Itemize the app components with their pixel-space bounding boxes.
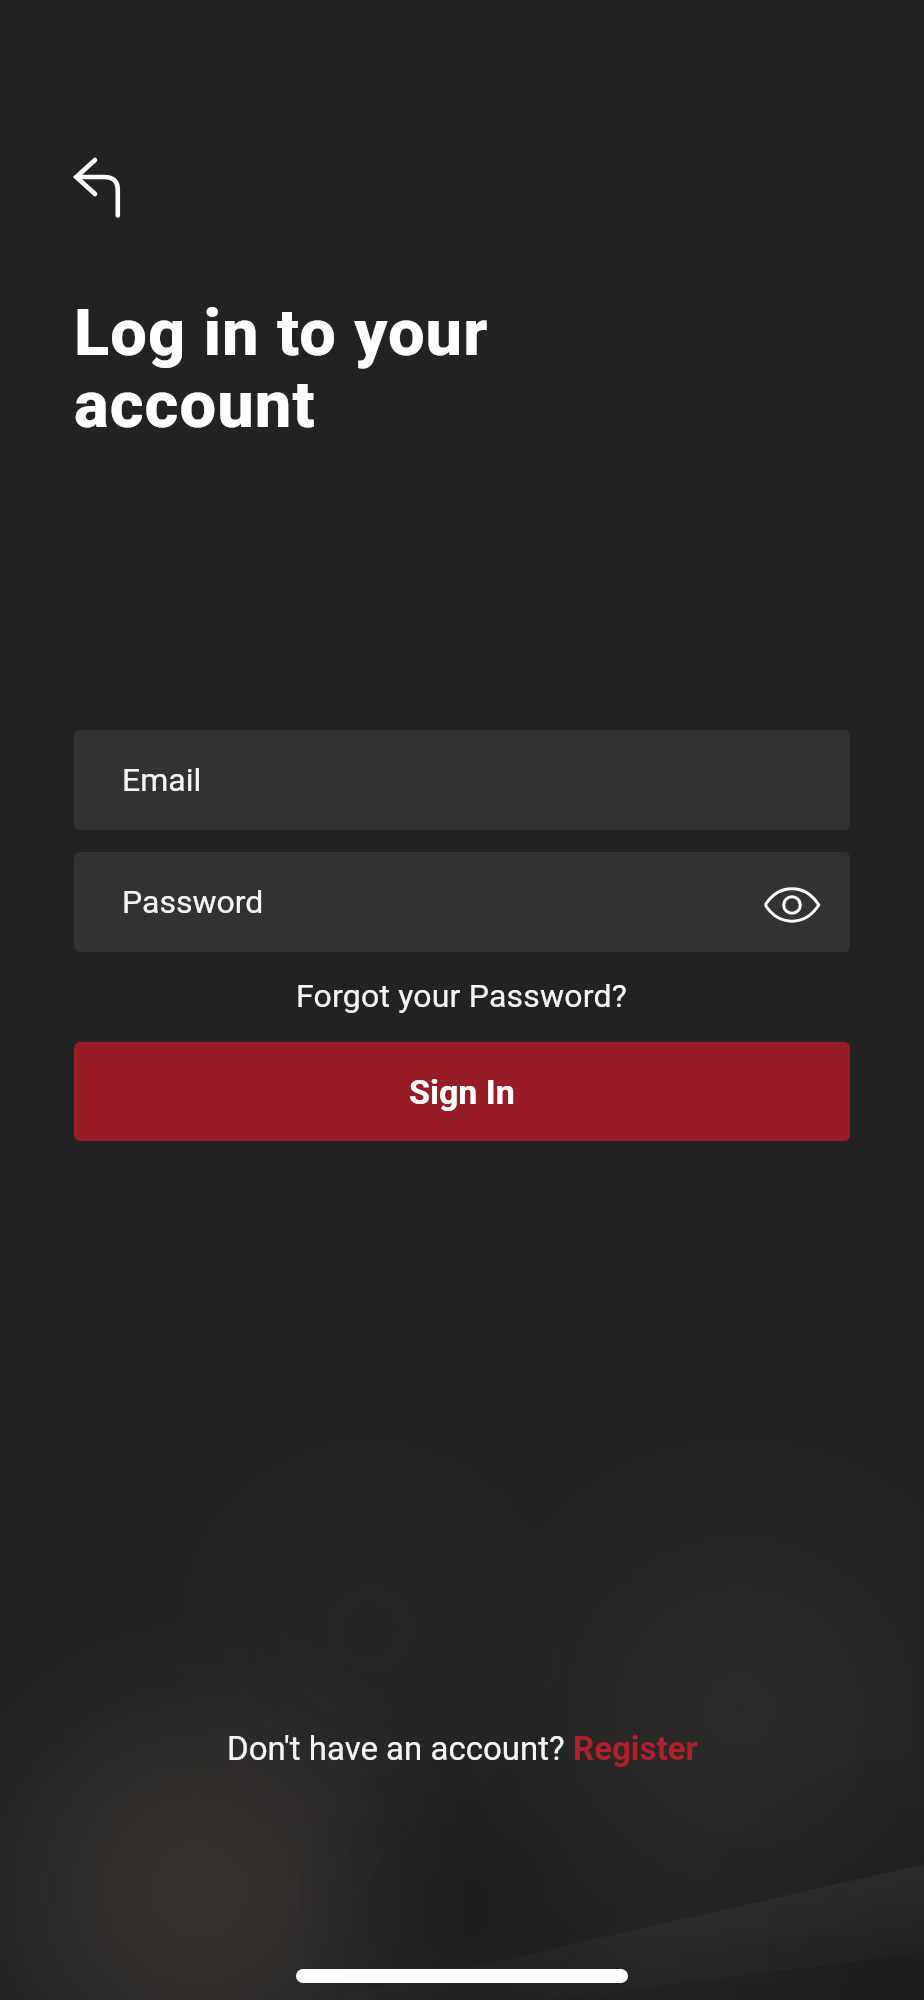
- button[interactable]: Sign In: [74, 1042, 850, 1141]
- button[interactable]: Forgot your Password?: [296, 977, 628, 1015]
- button[interactable]: Email: [74, 730, 850, 830]
- button[interactable]: Register: [573, 1729, 698, 1768]
- button[interactable]: Back: [66, 148, 130, 228]
- button[interactable]: Password: [74, 852, 850, 952]
- staticText: Sign In: [409, 1072, 515, 1112]
- staticText: Log in to your account: [74, 295, 489, 443]
- staticText: Don't have an account?: [227, 1729, 573, 1768]
- staticText: Password: [122, 883, 264, 921]
- staticText: Email: [122, 761, 202, 799]
- button[interactable]: Show password: [760, 873, 824, 937]
